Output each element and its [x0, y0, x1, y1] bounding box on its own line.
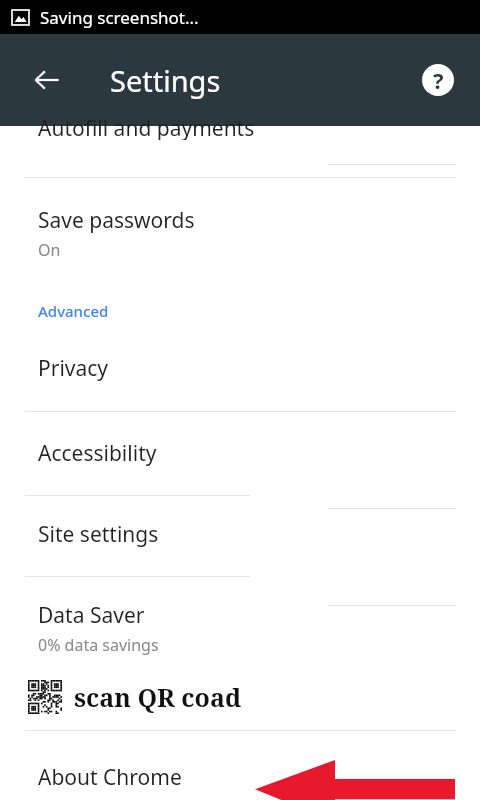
staticText: Data Saver: [38, 601, 145, 630]
button[interactable]: Accessibility: [0, 439, 480, 468]
button[interactable]: Site settings: [0, 520, 480, 549]
staticText: Settings: [110, 61, 221, 100]
staticText: Autofill and payments: [38, 114, 255, 140]
staticText: Site settings: [38, 520, 159, 549]
staticText: On: [38, 239, 61, 261]
button[interactable]: Help: [414, 56, 462, 104]
staticText: About Chrome: [38, 763, 182, 792]
staticText: scan QR coad: [74, 680, 242, 714]
button[interactable]: About Chrome: [0, 763, 480, 792]
staticText: Advanced: [38, 301, 109, 321]
button[interactable]: Save passwords: [0, 206, 480, 261]
button[interactable]: Back: [22, 55, 72, 105]
button[interactable]: Autofill and payments: [0, 126, 480, 152]
staticText: Privacy: [38, 354, 109, 383]
staticText: Save passwords: [38, 206, 195, 235]
button[interactable]: Advanced: [0, 301, 480, 321]
button[interactable]: Privacy: [0, 354, 480, 383]
button[interactable]: scan QR coad: [0, 670, 480, 724]
staticText: Accessibility: [38, 439, 157, 468]
staticText: Saving screenshot...: [40, 6, 199, 29]
staticText: 0% data savings: [38, 634, 159, 656]
button[interactable]: Data Saver: [0, 601, 480, 656]
staticText: ?: [433, 65, 444, 95]
